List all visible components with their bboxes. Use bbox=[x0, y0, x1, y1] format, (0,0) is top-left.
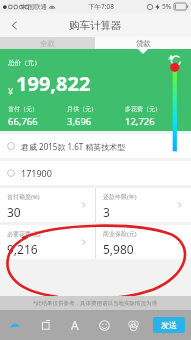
button[interactable]: 首付额度(%) bbox=[0, 188, 95, 222]
staticText: 首付（元） bbox=[8, 105, 38, 113]
staticText: ¥ bbox=[8, 85, 14, 97]
staticText: 12,726 bbox=[125, 115, 155, 128]
staticText: 总价（元） bbox=[8, 59, 41, 67]
staticText: 9,216 bbox=[7, 241, 38, 257]
staticText: 月供（元） bbox=[67, 105, 97, 113]
button[interactable]: 还款年限(年) bbox=[96, 188, 191, 222]
staticText: 购车计算器 bbox=[69, 19, 122, 32]
button[interactable]: Mosaic bbox=[124, 316, 142, 334]
staticText: 商业保险(元) bbox=[103, 230, 137, 238]
staticText: 贷款 bbox=[136, 39, 151, 48]
button[interactable]: Undo bbox=[169, 53, 183, 67]
button[interactable]: Text bbox=[66, 316, 84, 334]
staticText: 全款 bbox=[40, 39, 55, 48]
staticText: 君威 2015款 1.6T 精英技术型 bbox=[21, 141, 126, 152]
staticText: 66,766 bbox=[8, 115, 38, 128]
button[interactable]: 必要花费(元) bbox=[0, 225, 95, 259]
staticText: 3,696 bbox=[67, 115, 92, 128]
button[interactable]: 贷款 bbox=[95, 37, 191, 49]
button[interactable]: 商业保险(元) bbox=[96, 225, 191, 259]
button[interactable]: Draw bbox=[6, 316, 24, 334]
staticText: 171900 bbox=[21, 167, 52, 179]
staticText: 中国联通 bbox=[21, 3, 47, 11]
button[interactable]: 发送 bbox=[161, 320, 177, 330]
staticText: 发送 bbox=[161, 320, 177, 330]
button[interactable]: 君威 2015款 1.6T 精英技术型 bbox=[7, 134, 184, 158]
button[interactable]: Sticker bbox=[95, 316, 113, 334]
staticText: 下午7:08 bbox=[88, 2, 114, 11]
staticText: *此结果仅供参考，具体费用请以当地实际情况为准 bbox=[33, 299, 158, 307]
staticText: 30 bbox=[7, 204, 21, 220]
button[interactable]: 171900 bbox=[7, 161, 184, 185]
staticText: 199,822 bbox=[16, 70, 91, 97]
button[interactable]: Crop bbox=[36, 316, 54, 334]
staticText: 必要花费(元) bbox=[7, 230, 41, 238]
staticText: A bbox=[71, 317, 79, 333]
staticText: 首付额度(%) bbox=[7, 193, 40, 201]
staticText: 多花费（元） bbox=[125, 105, 161, 113]
staticText: 5,980 bbox=[103, 241, 134, 257]
staticText: 5% bbox=[162, 2, 172, 11]
button[interactable]: Back bbox=[3, 14, 25, 36]
staticText: 还款年限(年) bbox=[103, 193, 137, 201]
staticText: 3 bbox=[103, 204, 110, 220]
button[interactable]: 全款 bbox=[0, 37, 95, 49]
